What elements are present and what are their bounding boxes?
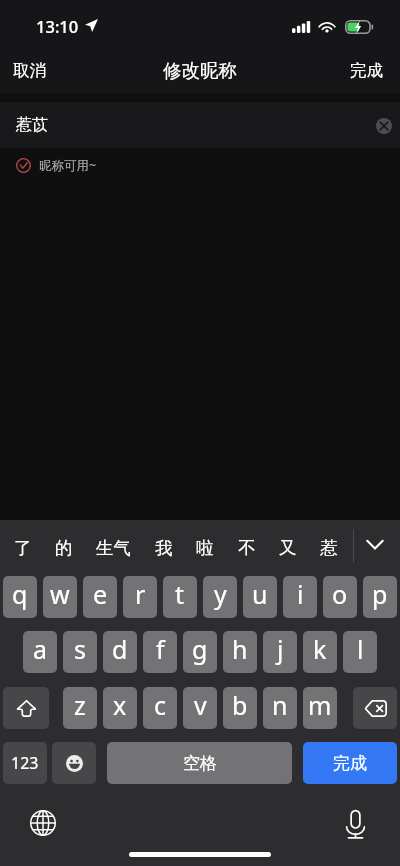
button[interactable]: t [163, 576, 197, 618]
staticText: 惹苡 [16, 115, 48, 135]
staticText: 啦 [196, 537, 214, 559]
button[interactable]: g [183, 631, 217, 673]
staticText: 惹 [320, 537, 338, 559]
staticText: a [33, 632, 48, 666]
staticText: w [50, 577, 70, 611]
staticText: 13:10 [36, 15, 79, 37]
staticText: p [372, 577, 388, 611]
button[interactable]: Shift [3, 687, 49, 729]
button[interactable]: l [343, 631, 377, 673]
staticText: v [194, 688, 207, 722]
button[interactable]: n [263, 687, 297, 729]
button[interactable]: q [3, 576, 37, 618]
button[interactable]: r [123, 576, 157, 618]
button[interactable]: z [63, 687, 97, 729]
staticText: u [252, 577, 268, 611]
button[interactable]: Emoji [52, 742, 96, 784]
staticText: 取消 [13, 60, 46, 81]
button[interactable]: 完成 [303, 742, 397, 784]
button[interactable]: p [363, 576, 397, 618]
button[interactable]: Dictation [340, 809, 370, 839]
staticText: d [112, 632, 128, 666]
staticText: m [308, 688, 332, 722]
staticText: 生气 [96, 537, 131, 559]
button[interactable]: 又 [274, 529, 302, 567]
button[interactable]: 空格 [107, 742, 292, 784]
staticText: s [74, 632, 86, 666]
button[interactable]: m [303, 687, 337, 729]
staticText: f [156, 632, 165, 666]
button[interactable]: 啦 [191, 529, 219, 567]
button[interactable]: 了 [9, 529, 37, 567]
staticText: l [357, 632, 364, 666]
button[interactable]: 完成 [334, 50, 400, 91]
staticText: 我 [155, 537, 173, 559]
staticText: i [297, 577, 304, 611]
button[interactable]: 生气 [91, 529, 136, 567]
button[interactable]: Change keyboard [30, 810, 56, 836]
staticText: 修改昵称 [163, 59, 237, 82]
staticText: r [135, 577, 146, 611]
button[interactable]: i [283, 576, 317, 618]
staticText: q [12, 577, 28, 611]
button[interactable]: 不 [233, 529, 261, 567]
button[interactable]: j [263, 631, 297, 673]
staticText: 完成 [333, 753, 367, 774]
button[interactable]: 我 [150, 529, 178, 567]
staticText: e [93, 577, 108, 611]
staticText: x [113, 688, 127, 722]
staticText: t [175, 577, 185, 611]
staticText: g [192, 632, 208, 666]
button[interactable]: b [223, 687, 257, 729]
button[interactable]: d [103, 631, 137, 673]
button[interactable]: k [303, 631, 337, 673]
button[interactable]: 123 [3, 742, 47, 784]
staticText: z [74, 688, 86, 722]
staticText: 了 [14, 537, 32, 559]
button[interactable]: v [183, 687, 217, 729]
button[interactable]: a [23, 631, 57, 673]
staticText: c [154, 688, 167, 722]
staticText: j [277, 632, 284, 666]
staticText: b [232, 688, 248, 722]
button[interactable]: s [63, 631, 97, 673]
staticText: 的 [55, 537, 73, 559]
button[interactable]: f [143, 631, 177, 673]
staticText: n [272, 688, 288, 722]
button[interactable]: x [103, 687, 137, 729]
button[interactable]: c [143, 687, 177, 729]
button[interactable]: y [203, 576, 237, 618]
button[interactable]: 惹 [315, 529, 343, 567]
staticText: o [332, 577, 348, 611]
button[interactable]: e [83, 576, 117, 618]
button[interactable]: 的 [50, 529, 78, 567]
button[interactable]: u [243, 576, 277, 618]
button[interactable]: Backspace [353, 687, 397, 729]
button[interactable]: w [43, 576, 77, 618]
staticText: 不 [238, 537, 256, 559]
staticText: 完成 [350, 60, 383, 81]
staticText: h [232, 632, 248, 666]
staticText: k [313, 632, 327, 666]
button[interactable]: o [323, 576, 357, 618]
button[interactable]: Clear text [369, 111, 399, 141]
staticText: 123 [11, 752, 39, 774]
button[interactable]: 取消 [0, 50, 62, 91]
staticText: 昵称可用~ [39, 157, 97, 174]
staticText: y [214, 577, 227, 611]
staticText: 又 [279, 537, 297, 559]
button[interactable]: h [223, 631, 257, 673]
button[interactable]: Hide candidates [352, 520, 400, 576]
staticText: 空格 [183, 753, 217, 774]
